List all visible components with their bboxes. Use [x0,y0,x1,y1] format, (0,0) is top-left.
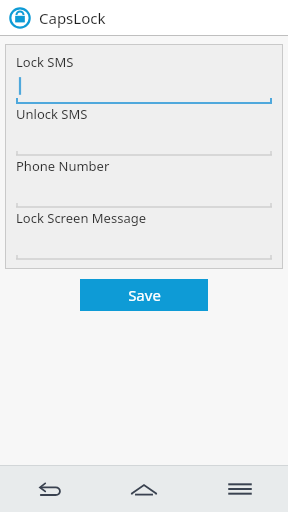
staticText: Phone Number [16,157,110,175]
staticText: Unlock SMS [16,105,88,123]
button[interactable] [12,71,276,105]
staticText: Lock Screen Message [16,209,147,227]
staticText: Lock SMS [16,53,74,71]
button[interactable]: Home [96,466,192,512]
button[interactable] [12,175,276,209]
button[interactable]: Menu [192,466,288,512]
staticText: CapsLock [39,8,106,28]
button[interactable] [12,227,276,261]
staticText: Save [128,285,161,305]
button[interactable] [12,123,276,157]
button[interactable]: Save [80,279,208,311]
button[interactable]: Back [0,466,96,512]
